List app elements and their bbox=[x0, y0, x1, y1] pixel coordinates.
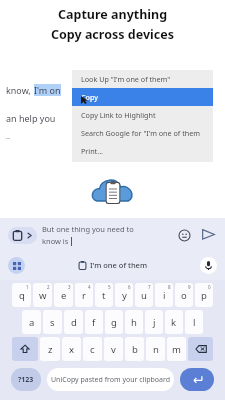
button[interactable]: k bbox=[165, 310, 183, 334]
staticText: k bbox=[171, 316, 177, 329]
button[interactable]: Print... bbox=[72, 142, 213, 160]
staticText: 5 bbox=[108, 284, 111, 290]
staticText: m bbox=[172, 343, 181, 356]
button[interactable]: i bbox=[155, 283, 173, 307]
staticText: y bbox=[122, 289, 127, 302]
staticText: Search Google for "I'm one of them bbox=[81, 128, 200, 138]
staticText: I'm one of them bbox=[90, 260, 147, 270]
staticText: But one thing you need to bbox=[42, 224, 134, 234]
button[interactable]: Clipboard bbox=[8, 227, 37, 244]
staticText: 2 bbox=[47, 284, 50, 290]
staticText: t bbox=[102, 289, 106, 302]
staticText: x bbox=[69, 343, 75, 356]
staticText: q bbox=[19, 289, 25, 302]
staticText: o bbox=[181, 289, 187, 302]
button[interactable]: y bbox=[115, 283, 133, 307]
staticText: f bbox=[92, 316, 96, 329]
staticText: Copy Link to Highlight bbox=[81, 110, 156, 120]
button[interactable]: q bbox=[12, 283, 31, 307]
staticText: v bbox=[111, 343, 116, 356]
button[interactable]: Voice input bbox=[200, 257, 217, 274]
staticText: j bbox=[153, 316, 156, 329]
staticText: 7 bbox=[148, 284, 151, 290]
staticText: Copy bbox=[81, 92, 98, 102]
button[interactable]: Emoji bbox=[176, 227, 192, 243]
button[interactable]: m bbox=[167, 337, 186, 361]
button[interactable]: r bbox=[75, 283, 93, 307]
button[interactable]: u bbox=[135, 283, 153, 307]
staticText: r bbox=[82, 289, 86, 302]
button[interactable]: Look Up "I'm one of them" bbox=[72, 70, 213, 88]
button[interactable]: h bbox=[125, 310, 143, 334]
staticText: g bbox=[111, 316, 117, 329]
staticText: 3 bbox=[68, 284, 71, 290]
button[interactable]: n bbox=[146, 337, 165, 361]
button[interactable]: UniCopy pasted from your clipboard bbox=[47, 368, 174, 391]
staticText: z bbox=[48, 343, 53, 356]
button[interactable]: I'm one of them bbox=[78, 260, 147, 270]
staticText: 6 bbox=[128, 284, 131, 290]
button[interactable]: o bbox=[175, 283, 193, 307]
staticText: 9 bbox=[188, 284, 191, 290]
button[interactable]: g bbox=[105, 310, 123, 334]
staticText: Capture anything bbox=[58, 6, 168, 23]
button[interactable]: Enter bbox=[180, 368, 214, 391]
staticText: n bbox=[153, 343, 159, 356]
staticText: an help you bbox=[6, 112, 58, 124]
button[interactable]: ?123 bbox=[11, 368, 41, 391]
button[interactable]: Send SMS bbox=[199, 226, 217, 244]
staticText: know, bbox=[6, 84, 34, 96]
button[interactable]: l bbox=[185, 310, 203, 334]
staticText: d bbox=[71, 316, 77, 329]
staticText: p bbox=[201, 289, 207, 302]
button[interactable]: a bbox=[22, 310, 41, 334]
staticText: Look Up "I'm one of them" bbox=[81, 74, 171, 84]
staticText: 0 bbox=[208, 284, 211, 290]
button[interactable]: t bbox=[95, 283, 113, 307]
staticText: UniCopy pasted from your clipboard bbox=[51, 375, 171, 385]
button[interactable]: d bbox=[64, 310, 83, 334]
button[interactable]: w bbox=[33, 283, 52, 307]
button[interactable]: e bbox=[54, 283, 73, 307]
staticText: ?123 bbox=[18, 375, 34, 385]
staticText: 1 bbox=[26, 284, 29, 290]
staticText: .. bbox=[6, 132, 10, 142]
button[interactable]: j bbox=[145, 310, 163, 334]
button[interactable]: v bbox=[104, 337, 123, 361]
staticText: h bbox=[131, 316, 137, 329]
button[interactable]: p bbox=[195, 283, 213, 307]
button[interactable]: c bbox=[83, 337, 102, 361]
staticText: 4 bbox=[88, 284, 91, 290]
button[interactable]: f bbox=[85, 310, 103, 334]
staticText: c bbox=[90, 343, 95, 356]
staticText: know is bbox=[42, 236, 69, 246]
staticText: s bbox=[50, 316, 55, 329]
button[interactable]: Shift bbox=[12, 337, 38, 361]
button[interactable]: b bbox=[125, 337, 144, 361]
button[interactable]: Copy bbox=[72, 88, 213, 106]
staticText: Print... bbox=[81, 146, 103, 156]
staticText: Copy across devices bbox=[51, 26, 174, 43]
staticText: 8 bbox=[168, 284, 171, 290]
staticText: e bbox=[61, 289, 67, 302]
button[interactable]: s bbox=[43, 310, 62, 334]
staticText: b bbox=[132, 343, 138, 356]
button[interactable]: Copy Link to Highlight bbox=[72, 106, 213, 124]
staticText: i bbox=[163, 289, 166, 302]
staticText: w bbox=[39, 289, 47, 302]
button[interactable]: Backspace bbox=[188, 337, 213, 361]
button[interactable]: x bbox=[62, 337, 81, 361]
button[interactable]: Search Google for "I'm one of them bbox=[72, 124, 213, 142]
button[interactable]: z bbox=[40, 337, 60, 361]
staticText: a bbox=[29, 316, 35, 329]
button[interactable]: Apps bbox=[8, 257, 25, 274]
staticText: u bbox=[141, 289, 147, 302]
staticText: I'm on bbox=[34, 84, 61, 96]
staticText: l bbox=[193, 316, 196, 329]
